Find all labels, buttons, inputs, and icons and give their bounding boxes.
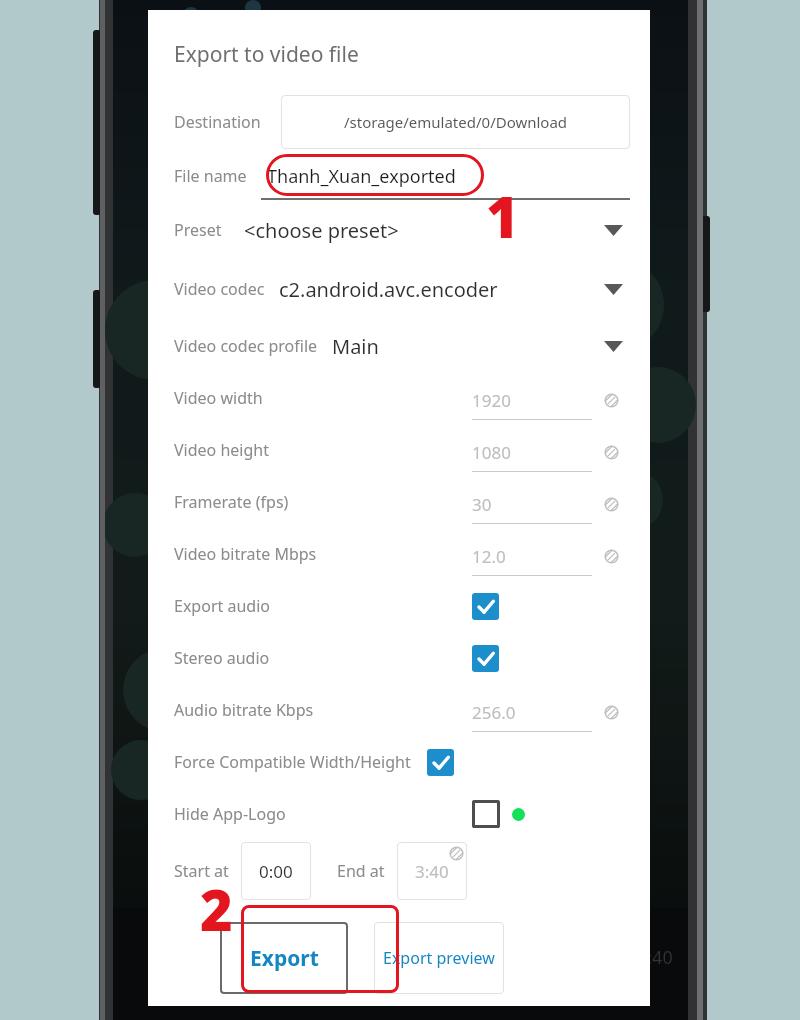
- button[interactable]: Checkbox: [472, 800, 500, 828]
- button[interactable]: Expand: [596, 272, 630, 306]
- button[interactable]: Expand: [596, 213, 630, 247]
- staticText: Video width: [174, 387, 263, 409]
- staticText: Framerate (fps): [174, 491, 289, 513]
- staticText: End at: [337, 860, 385, 882]
- staticText: 12.0: [472, 545, 506, 568]
- staticText: 256.0: [472, 701, 516, 724]
- button[interactable]: Checkbox: [472, 593, 499, 620]
- staticText: Preset: [174, 219, 222, 241]
- button[interactable]: Export: [220, 922, 348, 994]
- button[interactable]: Checkbox: [427, 749, 454, 776]
- staticText: c2.android.avc.encoder: [279, 276, 498, 303]
- button[interactable]: 256.0: [472, 688, 592, 732]
- button[interactable]: Thanh_Xuan_exported: [261, 152, 630, 200]
- staticText: /storage/emulated/0/Download: [344, 112, 568, 132]
- staticText: 1080: [472, 441, 511, 464]
- staticText: Video codec: [174, 278, 265, 300]
- staticText: 1920: [472, 389, 511, 412]
- staticText: Thanh_Xuan_exported: [267, 164, 456, 189]
- staticText: Export: [250, 944, 319, 973]
- button[interactable]: Checkbox: [472, 645, 499, 672]
- button[interactable]: 30: [472, 480, 592, 524]
- button[interactable]: 3:40: [397, 842, 467, 900]
- button[interactable]: Export preview: [374, 922, 504, 994]
- staticText: Stereo audio: [174, 647, 270, 669]
- staticText: Export preview: [383, 947, 495, 969]
- staticText: Video codec profile: [174, 335, 318, 357]
- staticText: Force Compatible Width/Height: [174, 751, 411, 773]
- button[interactable]: Expand: [596, 329, 630, 363]
- staticText: <choose preset>: [244, 217, 399, 244]
- staticText: 30: [472, 493, 492, 516]
- staticText: Destination: [174, 111, 261, 133]
- staticText: Video bitrate Mbps: [174, 543, 317, 565]
- staticText: 1: [486, 178, 519, 254]
- staticText: 2: [200, 871, 233, 947]
- staticText: 0:00: [259, 860, 293, 883]
- staticText: File name: [174, 165, 247, 187]
- button[interactable]: /storage/emulated/0/Download: [281, 95, 630, 149]
- staticText: Export audio: [174, 595, 270, 617]
- staticText: Video height: [174, 439, 269, 461]
- staticText: Audio bitrate Kbps: [174, 699, 314, 721]
- staticText: 3:40: [637, 945, 673, 970]
- button[interactable]: 12.0: [472, 532, 592, 576]
- staticText: Main: [332, 333, 379, 360]
- button[interactable]: 1080: [472, 428, 592, 472]
- button[interactable]: 1920: [472, 376, 592, 420]
- button[interactable]: 0:00: [241, 842, 311, 900]
- staticText: Start at: [174, 860, 229, 882]
- staticText: 3:40: [415, 860, 449, 883]
- staticText: Hide App-Logo: [174, 803, 286, 825]
- staticText: Export to video file: [174, 40, 359, 69]
